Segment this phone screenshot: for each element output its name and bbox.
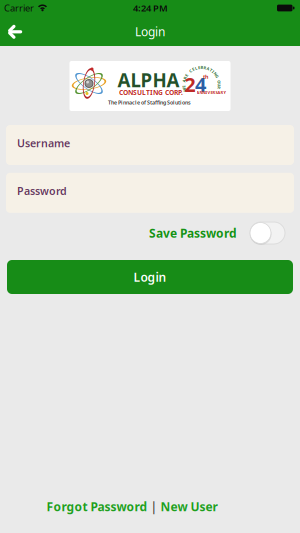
button[interactable]: New User [160,498,217,514]
staticText: CONSULTING CORP. [119,88,183,97]
button[interactable]: Login [7,260,293,294]
staticText: Login [135,23,165,39]
staticText: G [216,74,219,79]
staticText [188,70,189,75]
button[interactable]: Forgot Password [46,498,147,514]
button[interactable]: Save Password [250,222,285,244]
staticText: 2 [184,71,195,98]
staticText: C [189,68,192,73]
button[interactable]: Password [6,173,294,213]
staticText: Forgot Password [46,498,147,514]
staticText: A [207,66,210,71]
staticText: R [204,65,207,70]
staticText: ANNIVERSARY [196,90,226,95]
staticText: Save Password [149,225,237,241]
staticText: E [183,84,185,89]
staticText: th [203,73,208,80]
staticText: R [184,75,187,80]
staticText: A [183,78,186,83]
staticText: 4:24 PM [133,2,168,14]
staticText: E [192,67,194,72]
staticText: Password [17,184,67,198]
staticText: New User [160,498,217,514]
staticText: L [195,65,197,71]
staticText: Username [17,136,70,150]
staticText: The Pinnacle of Staffing Solutions [108,99,191,106]
staticText [183,81,184,86]
staticText: T [210,67,212,72]
staticText: U [218,82,221,87]
button[interactable]: Username [6,125,294,165]
staticText: B [201,65,204,70]
staticText: W [182,87,186,92]
button[interactable]: Back [0,18,30,46]
staticText: Login [133,269,166,285]
staticText: I [212,69,214,74]
staticText: E [185,73,187,78]
staticText: 4 [195,71,206,98]
staticText: N [214,71,217,76]
staticText: Carrier [4,2,34,14]
staticText: | [150,498,157,514]
staticText: E [198,65,200,70]
staticText: O [218,79,221,84]
staticText: R [217,85,220,90]
staticText [218,76,219,82]
staticText: ALPHA [117,68,179,92]
